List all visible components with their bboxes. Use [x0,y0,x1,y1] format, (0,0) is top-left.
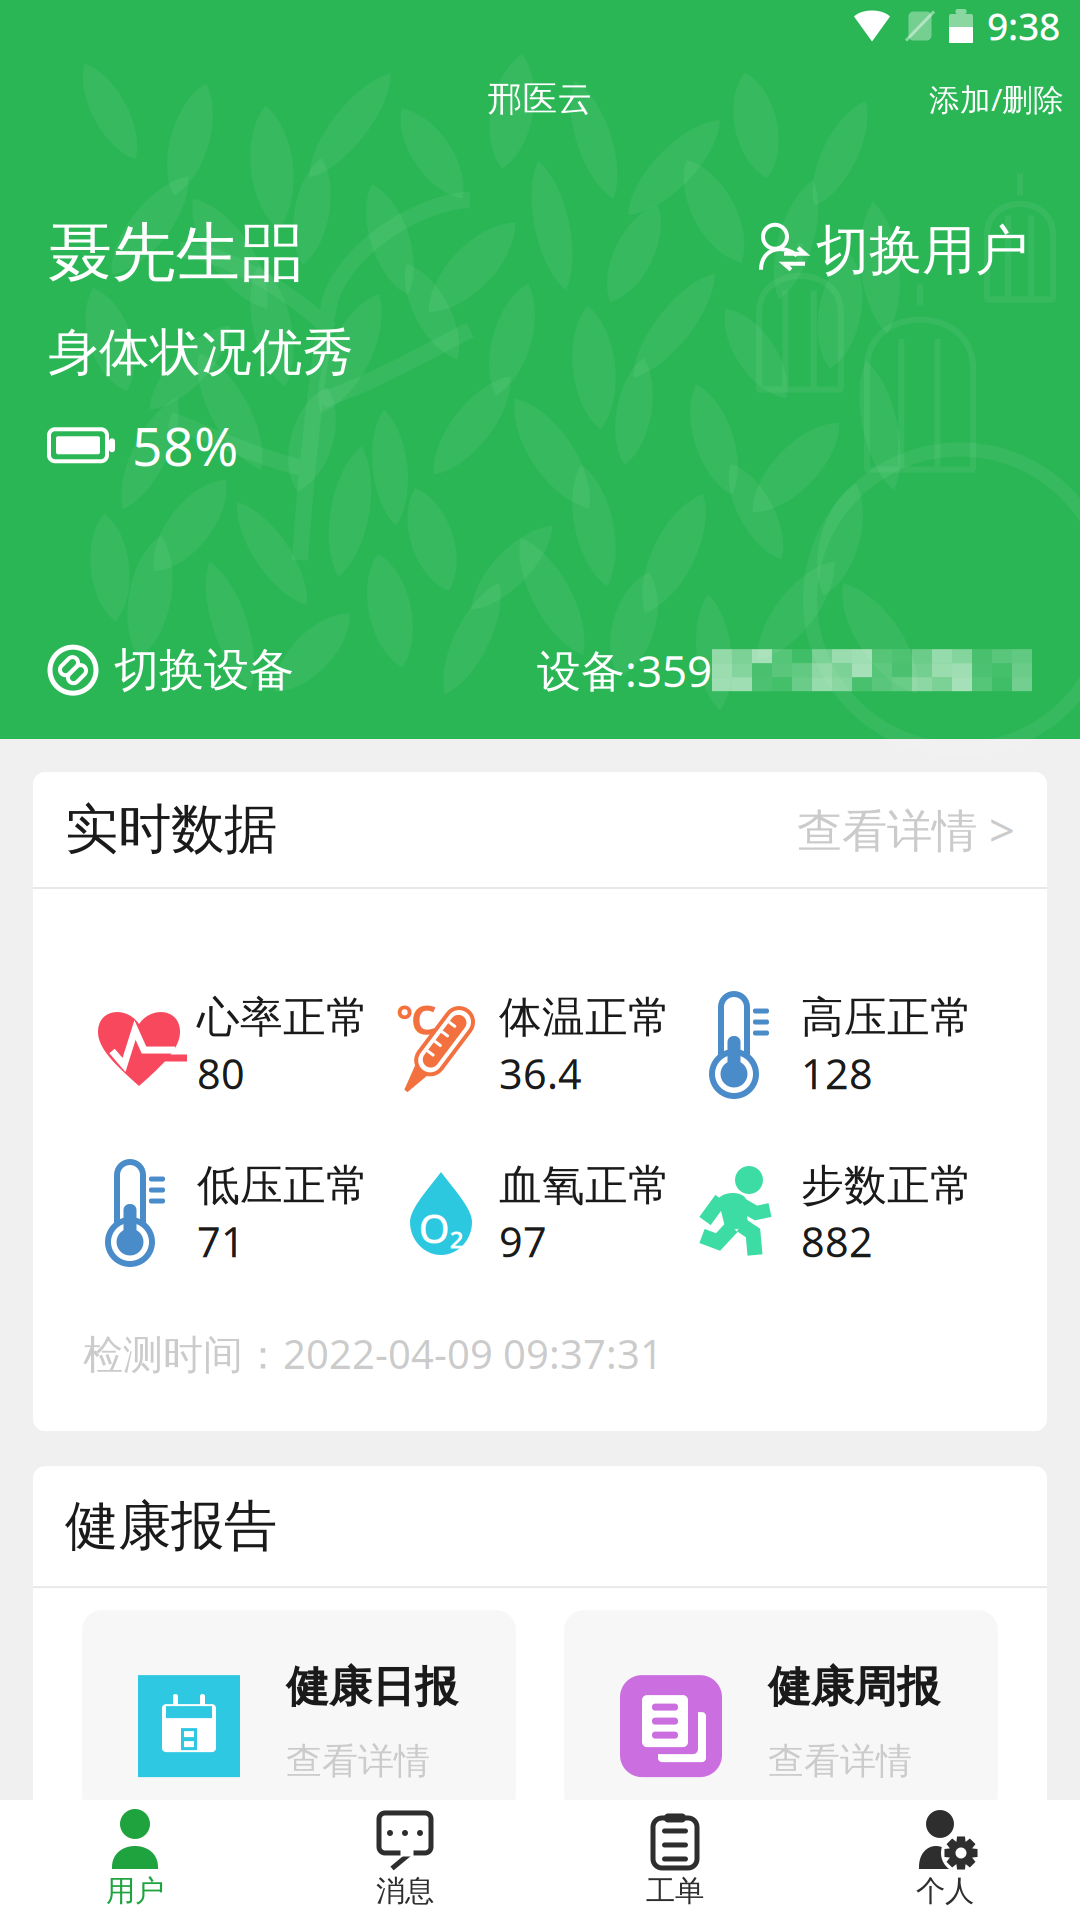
staticText: 58% [132,410,238,481]
staticText: 71 [197,1214,245,1269]
staticText: 36.4 [499,1046,582,1101]
staticText: 用户 [106,1873,164,1909]
button[interactable]: 实时数据 [33,772,1047,887]
button[interactable]: 健康日报 [82,1610,516,1814]
button[interactable]: 切换用户 [756,214,1032,287]
staticText: 身体状况优秀 [48,322,354,384]
staticText: 882 [801,1214,873,1269]
button[interactable]: 切换设备 [48,636,294,704]
staticText: 80 [197,1046,245,1101]
staticText: 体温正常 [499,991,671,1044]
button[interactable]: 健康周报 [564,1610,998,1814]
staticText: 切换用户 [816,218,1028,283]
button[interactable]: 消息 [270,1803,540,1917]
staticText: 查看详情 [286,1739,430,1783]
staticText: 128 [801,1046,873,1101]
staticText: 健康日报 [286,1661,458,1713]
button[interactable]: 用户 [0,1803,270,1917]
button[interactable]: 工单 [540,1803,810,1917]
staticText: 查看详情 > [797,799,1015,860]
staticText: 设备:359 [537,641,712,699]
staticText: 高压正常 [801,991,973,1044]
staticText: 消息 [376,1873,434,1909]
staticText: 健康报告 [65,1493,277,1559]
staticText: 低压正常 [197,1159,369,1212]
staticText: 个人 [916,1873,974,1909]
staticText: 聂先生㗊 [48,214,304,293]
staticText: 邢医云 [487,78,592,120]
staticText: 检测时间：2022-04-09 09:37:31 [83,1327,663,1380]
staticText: 切换设备 [114,642,294,698]
staticText: ℃ [396,992,436,1045]
staticText: 血氧正常 [499,1159,671,1212]
staticText: O₂ [418,1201,463,1254]
staticText: 97 [499,1214,547,1269]
staticText: 查看详情 [768,1739,912,1783]
staticText: 9:38 [987,1,1060,51]
staticText: 步数正常 [801,1159,973,1212]
staticText: 工单 [646,1873,704,1909]
staticText: 心率正常 [197,991,369,1044]
staticText: 添加/删除 [929,79,1064,119]
button[interactable]: 添加/删除 [929,67,1080,131]
staticText: 实时数据 [65,797,277,862]
staticText: 健康周报 [768,1661,940,1713]
button[interactable]: 个人 [810,1803,1080,1917]
